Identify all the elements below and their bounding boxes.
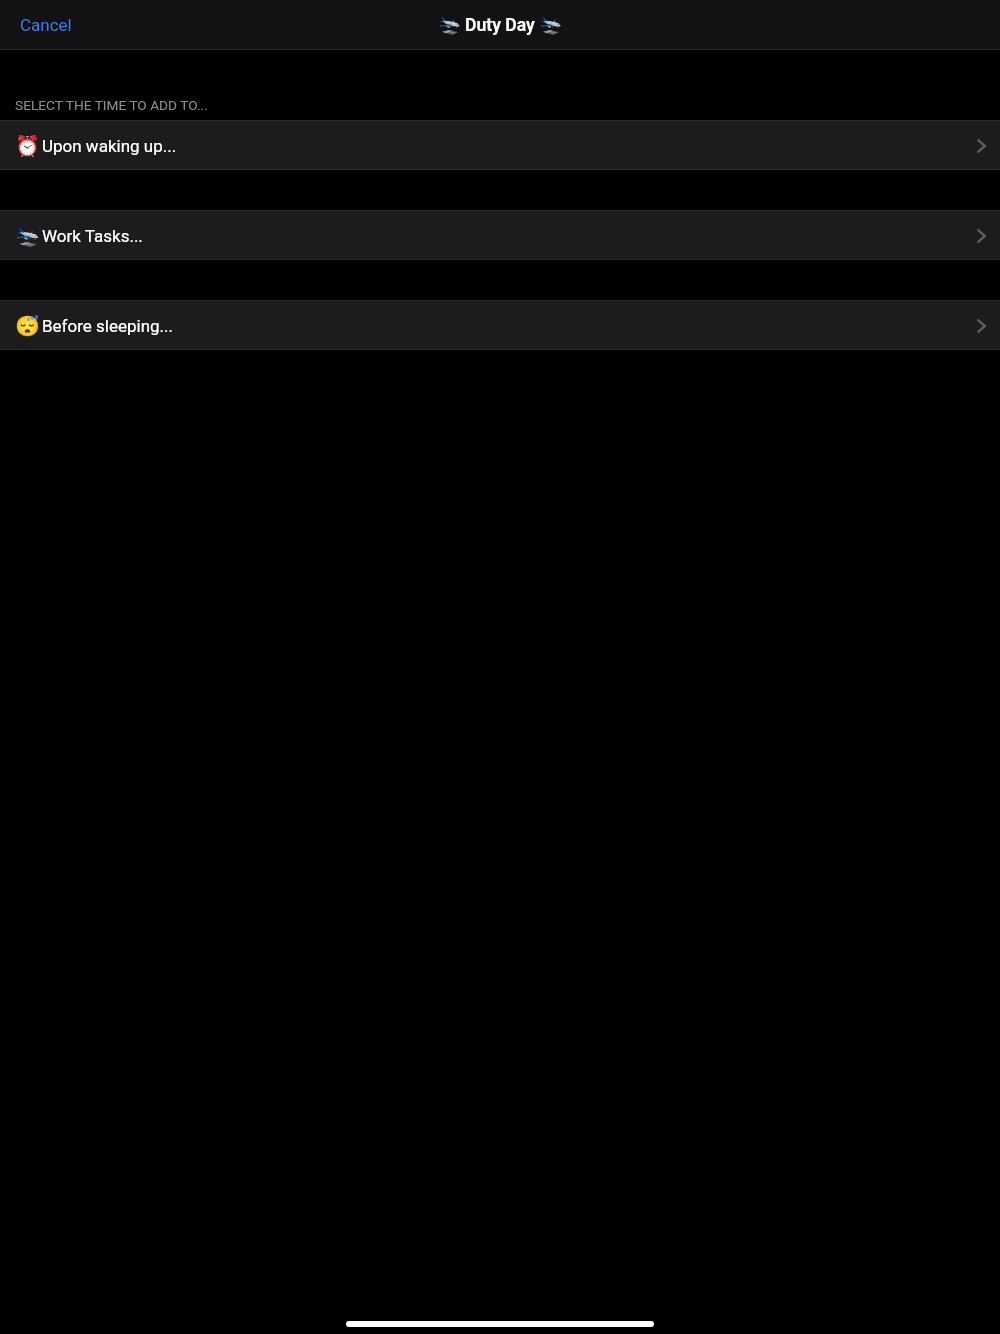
staticText: 😴	[15, 314, 40, 337]
button[interactable]: 🛬	[0, 210, 1000, 260]
staticText: ⏰	[15, 134, 40, 157]
button[interactable]: ⏰	[0, 120, 1000, 170]
other: Open	[977, 139, 986, 153]
staticText: Work Tasks...	[42, 226, 143, 246]
other: Open	[977, 229, 986, 243]
other: Open	[977, 319, 986, 333]
button[interactable]: 😴	[0, 300, 1000, 350]
staticText: 🛬	[15, 224, 40, 247]
staticText: SELECT THE TIME TO ADD TO...	[15, 97, 208, 113]
staticText: 🛬	[438, 14, 462, 36]
staticText: 🛬	[539, 14, 563, 36]
staticText: Before sleeping...	[42, 316, 174, 336]
button[interactable]: Cancel	[12, 11, 80, 39]
staticText: Duty Day	[465, 15, 535, 36]
staticText: Cancel	[20, 15, 72, 35]
staticText: Upon waking up...	[42, 136, 177, 156]
